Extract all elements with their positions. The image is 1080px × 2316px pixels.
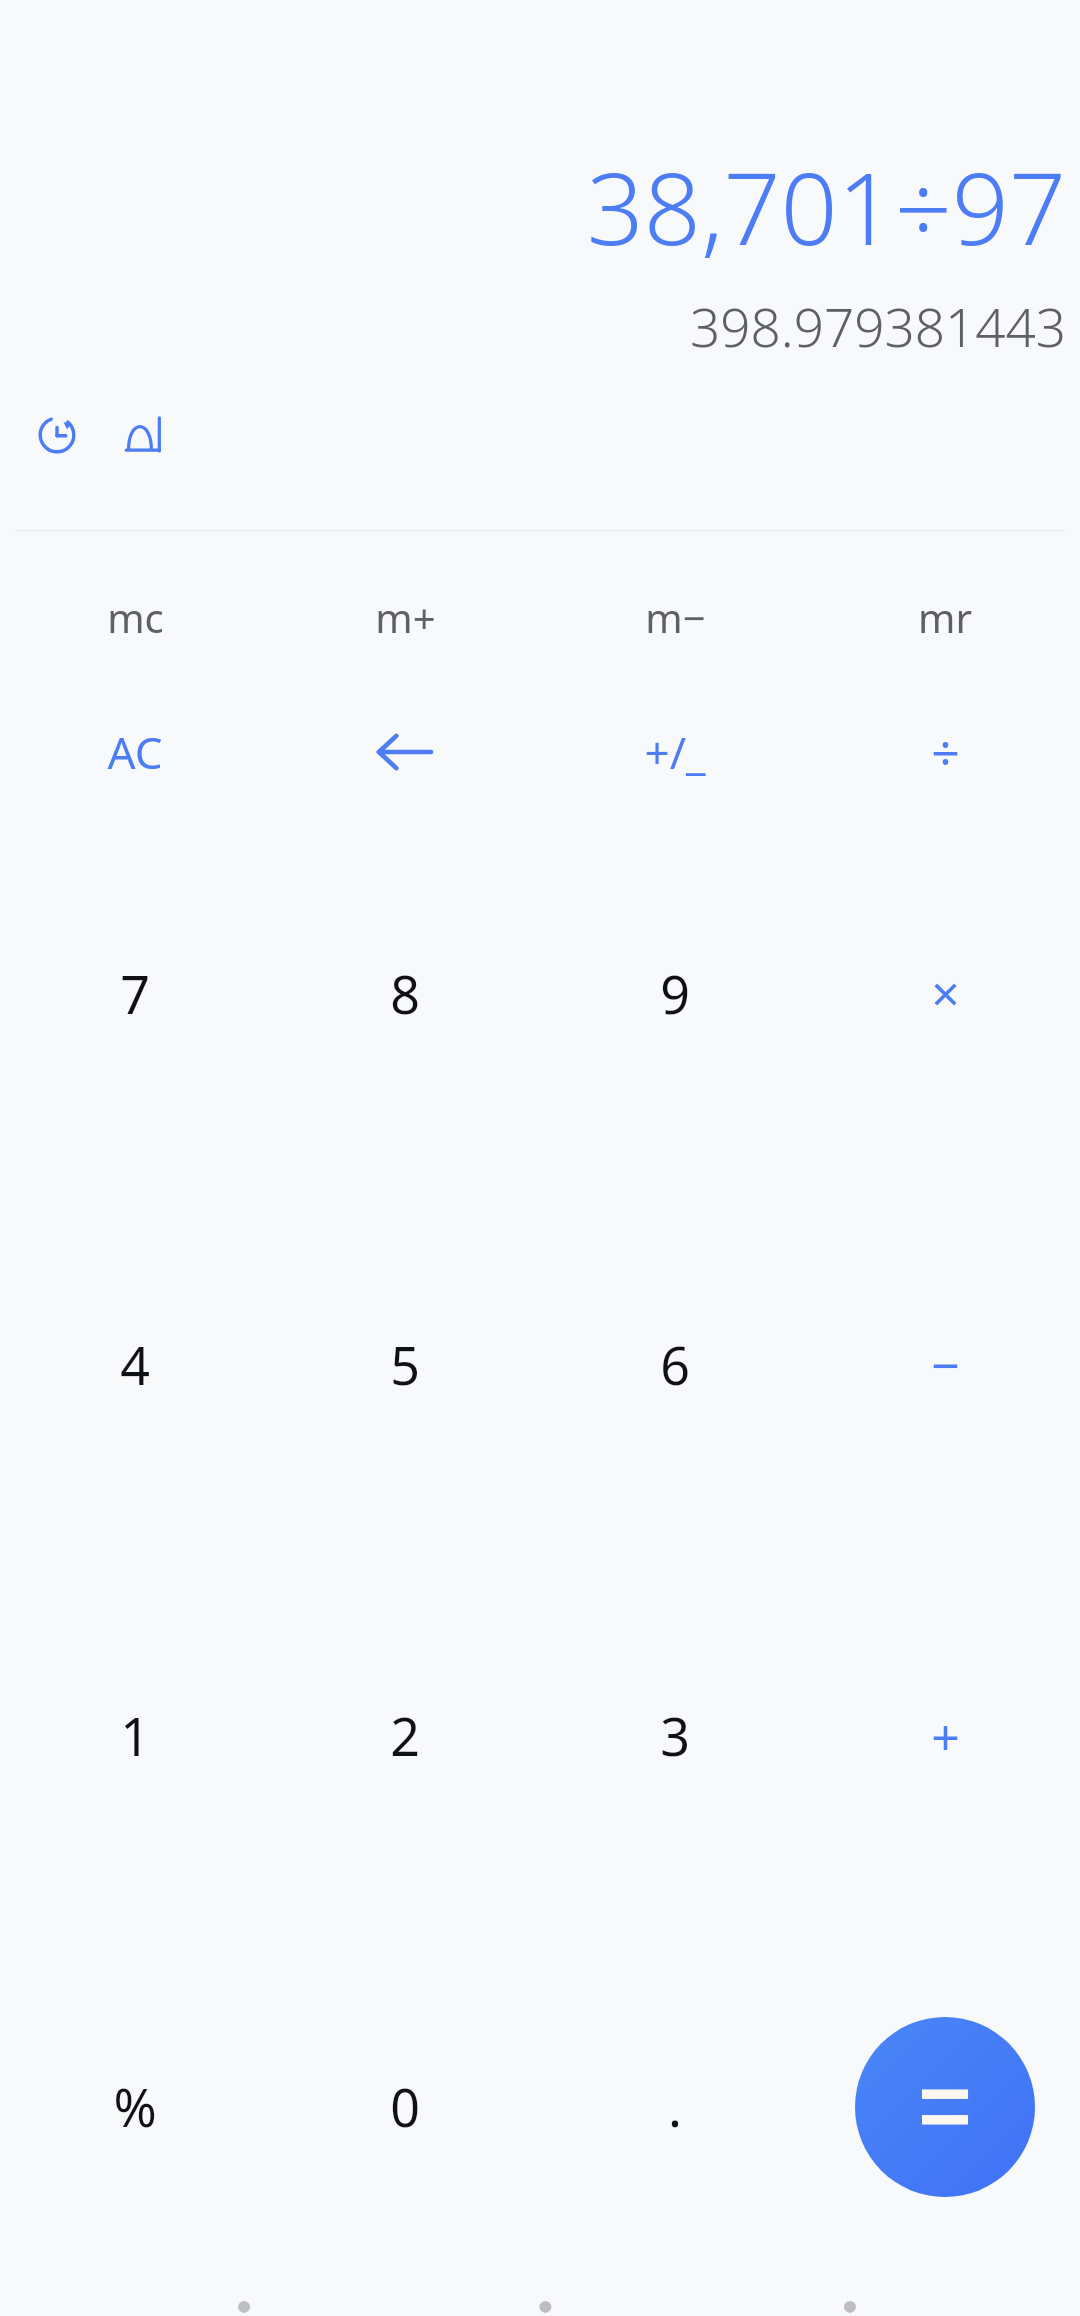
staticText: mc <box>107 590 164 644</box>
staticText: m+ <box>375 590 436 644</box>
staticText: 1 <box>120 1700 150 1771</box>
button[interactable]: + <box>810 1550 1080 1921</box>
button[interactable]: 5 <box>270 1179 540 1550</box>
staticText: 38,701÷97 <box>586 138 1066 274</box>
staticText: − <box>931 1331 960 1399</box>
button[interactable]: Equals <box>855 2017 1035 2197</box>
staticText: 4 <box>120 1329 150 1400</box>
button[interactable]: − <box>810 1179 1080 1550</box>
button[interactable]: mc <box>0 567 270 667</box>
staticText: ÷ <box>931 718 960 786</box>
button[interactable]: AC <box>0 697 270 807</box>
button[interactable]: m− <box>540 567 810 667</box>
staticText: m− <box>645 590 706 644</box>
staticText: 6 <box>660 1329 690 1400</box>
button[interactable]: 1 <box>0 1550 270 1921</box>
button[interactable]: 7 <box>0 807 270 1179</box>
staticText: 0 <box>390 2071 420 2142</box>
staticText: 2 <box>390 1700 420 1771</box>
button[interactable]: Graph <box>108 400 178 470</box>
button[interactable]: Backspace <box>270 697 540 807</box>
staticText: AC <box>107 722 163 782</box>
button[interactable]: +/_ <box>540 697 810 807</box>
button[interactable]: 8 <box>270 807 540 1179</box>
staticText: . <box>668 2071 682 2142</box>
staticText: 3 <box>660 1700 690 1771</box>
staticText: 5 <box>390 1329 420 1400</box>
staticText: % <box>113 2071 157 2142</box>
button[interactable]: ÷ <box>810 697 1080 807</box>
button[interactable]: 2 <box>270 1550 540 1921</box>
button[interactable]: % <box>0 1921 270 2292</box>
staticText: × <box>931 959 960 1027</box>
staticText: 7 <box>120 958 150 1029</box>
button[interactable]: . <box>540 1921 810 2292</box>
button[interactable]: 3 <box>540 1550 810 1921</box>
button[interactable]: × <box>810 807 1080 1179</box>
staticText: mr <box>918 590 972 644</box>
staticText: 9 <box>660 958 690 1029</box>
button[interactable]: 4 <box>0 1179 270 1550</box>
button[interactable]: History <box>22 400 92 470</box>
button[interactable]: mr <box>810 567 1080 667</box>
staticText: + <box>931 1702 960 1770</box>
button[interactable]: 6 <box>540 1179 810 1550</box>
staticText: 398.979381443 <box>689 290 1066 362</box>
button[interactable]: 9 <box>540 807 810 1179</box>
staticText: +/_ <box>644 722 706 782</box>
button[interactable]: m+ <box>270 567 540 667</box>
staticText: 8 <box>390 958 420 1029</box>
button[interactable]: 0 <box>270 1921 540 2292</box>
